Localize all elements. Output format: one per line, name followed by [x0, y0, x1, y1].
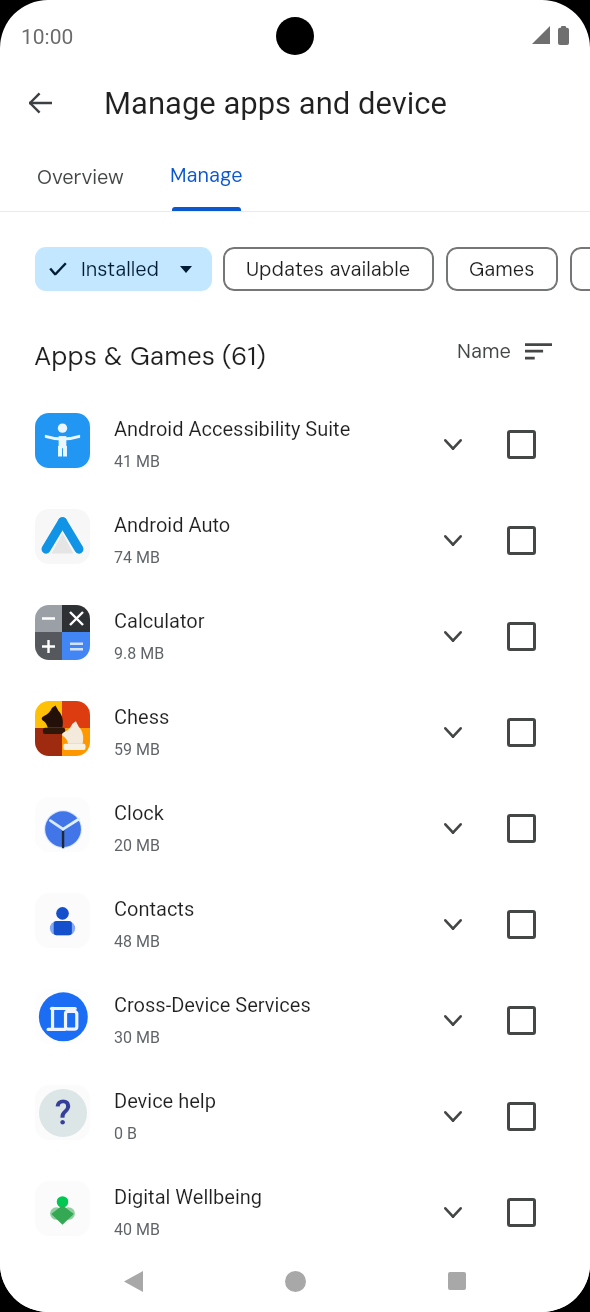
button[interactable]: Contacts	[0, 872, 590, 968]
button[interactable]: Ratings	[570, 247, 590, 291]
button[interactable]: Digital Wellbeing	[0, 1160, 590, 1256]
button[interactable]: Select Android Auto	[499, 518, 543, 562]
button[interactable]: Updates available	[223, 247, 434, 291]
button[interactable]: Manage	[160, 142, 253, 212]
button[interactable]: Select Android Accessibility Suite	[499, 422, 543, 466]
staticText: 10:00	[21, 25, 74, 50]
staticText: Cross-Device Services	[114, 993, 311, 1016]
staticText: ?	[55, 1092, 72, 1132]
staticText: 30 MB	[114, 1028, 160, 1047]
button[interactable]: Expand Clock	[429, 805, 476, 852]
button[interactable]: Expand Android Accessibility Suite	[429, 421, 476, 468]
button[interactable]: Select Digital Wellbeing	[499, 1190, 543, 1234]
button[interactable]: Select Calculator	[499, 614, 543, 658]
staticText: Android Accessibility Suite	[114, 417, 351, 440]
staticText: Overview	[37, 164, 124, 190]
staticText: 20 MB	[114, 836, 160, 855]
staticText: Clock	[114, 801, 164, 824]
staticText: Apps & Games (61)	[34, 339, 266, 373]
staticText: Games	[469, 256, 535, 282]
button[interactable]: Expand Cross-Device Services	[429, 997, 476, 1044]
button[interactable]: Expand Device help	[429, 1093, 476, 1140]
staticText: 59 MB	[114, 740, 160, 759]
button[interactable]: Android Auto	[0, 488, 590, 584]
staticText: Installed	[81, 256, 159, 282]
button[interactable]: Select Device help	[499, 1094, 543, 1138]
button[interactable]: Expand Contacts	[429, 901, 476, 948]
staticText: Chess	[114, 705, 170, 728]
staticText: Calculator	[114, 609, 205, 632]
button[interactable]: Name	[450, 332, 559, 370]
staticText: Contacts	[114, 897, 195, 920]
button[interactable]: Expand Chess	[429, 709, 476, 756]
button[interactable]: Chess	[0, 680, 590, 776]
button[interactable]: Cross-Device Services	[0, 968, 590, 1064]
staticText: 41 MB	[114, 452, 160, 471]
button[interactable]: Expand Android Auto	[429, 517, 476, 564]
staticText: Android Auto	[114, 513, 231, 536]
staticText: Name	[457, 338, 511, 364]
staticText: Updates available	[246, 256, 411, 282]
button[interactable]: Android Accessibility Suite	[0, 392, 590, 488]
button[interactable]: Recents	[431, 1255, 483, 1307]
button[interactable]: Expand Digital Wellbeing	[429, 1189, 476, 1236]
staticText: Device help	[114, 1089, 216, 1112]
button[interactable]: Installed	[35, 247, 212, 291]
button[interactable]: Calculator	[0, 584, 590, 680]
button[interactable]: Overview	[0, 142, 160, 211]
button[interactable]: Select Cross-Device Services	[499, 998, 543, 1042]
staticText: 48 MB	[114, 932, 160, 951]
button[interactable]: Back	[12, 75, 68, 131]
button[interactable]: Select Contacts	[499, 902, 543, 946]
staticText: 74 MB	[114, 548, 160, 567]
button[interactable]: Back	[107, 1255, 159, 1307]
button[interactable]: ?	[0, 1064, 590, 1160]
staticText: 0 B	[114, 1124, 137, 1143]
button[interactable]: Games	[446, 247, 558, 291]
staticText: 9.8 MB	[114, 644, 165, 663]
button[interactable]: Select Clock	[499, 806, 543, 850]
staticText: Digital Wellbeing	[114, 1185, 263, 1208]
button[interactable]: Expand Calculator	[429, 613, 476, 660]
button[interactable]: Home	[269, 1255, 321, 1307]
staticText: Manage	[170, 162, 243, 188]
staticText: 40 MB	[114, 1220, 160, 1239]
button[interactable]: Clock	[0, 776, 590, 872]
button[interactable]: Select Chess	[499, 710, 543, 754]
staticText: Manage apps and device	[104, 85, 447, 121]
